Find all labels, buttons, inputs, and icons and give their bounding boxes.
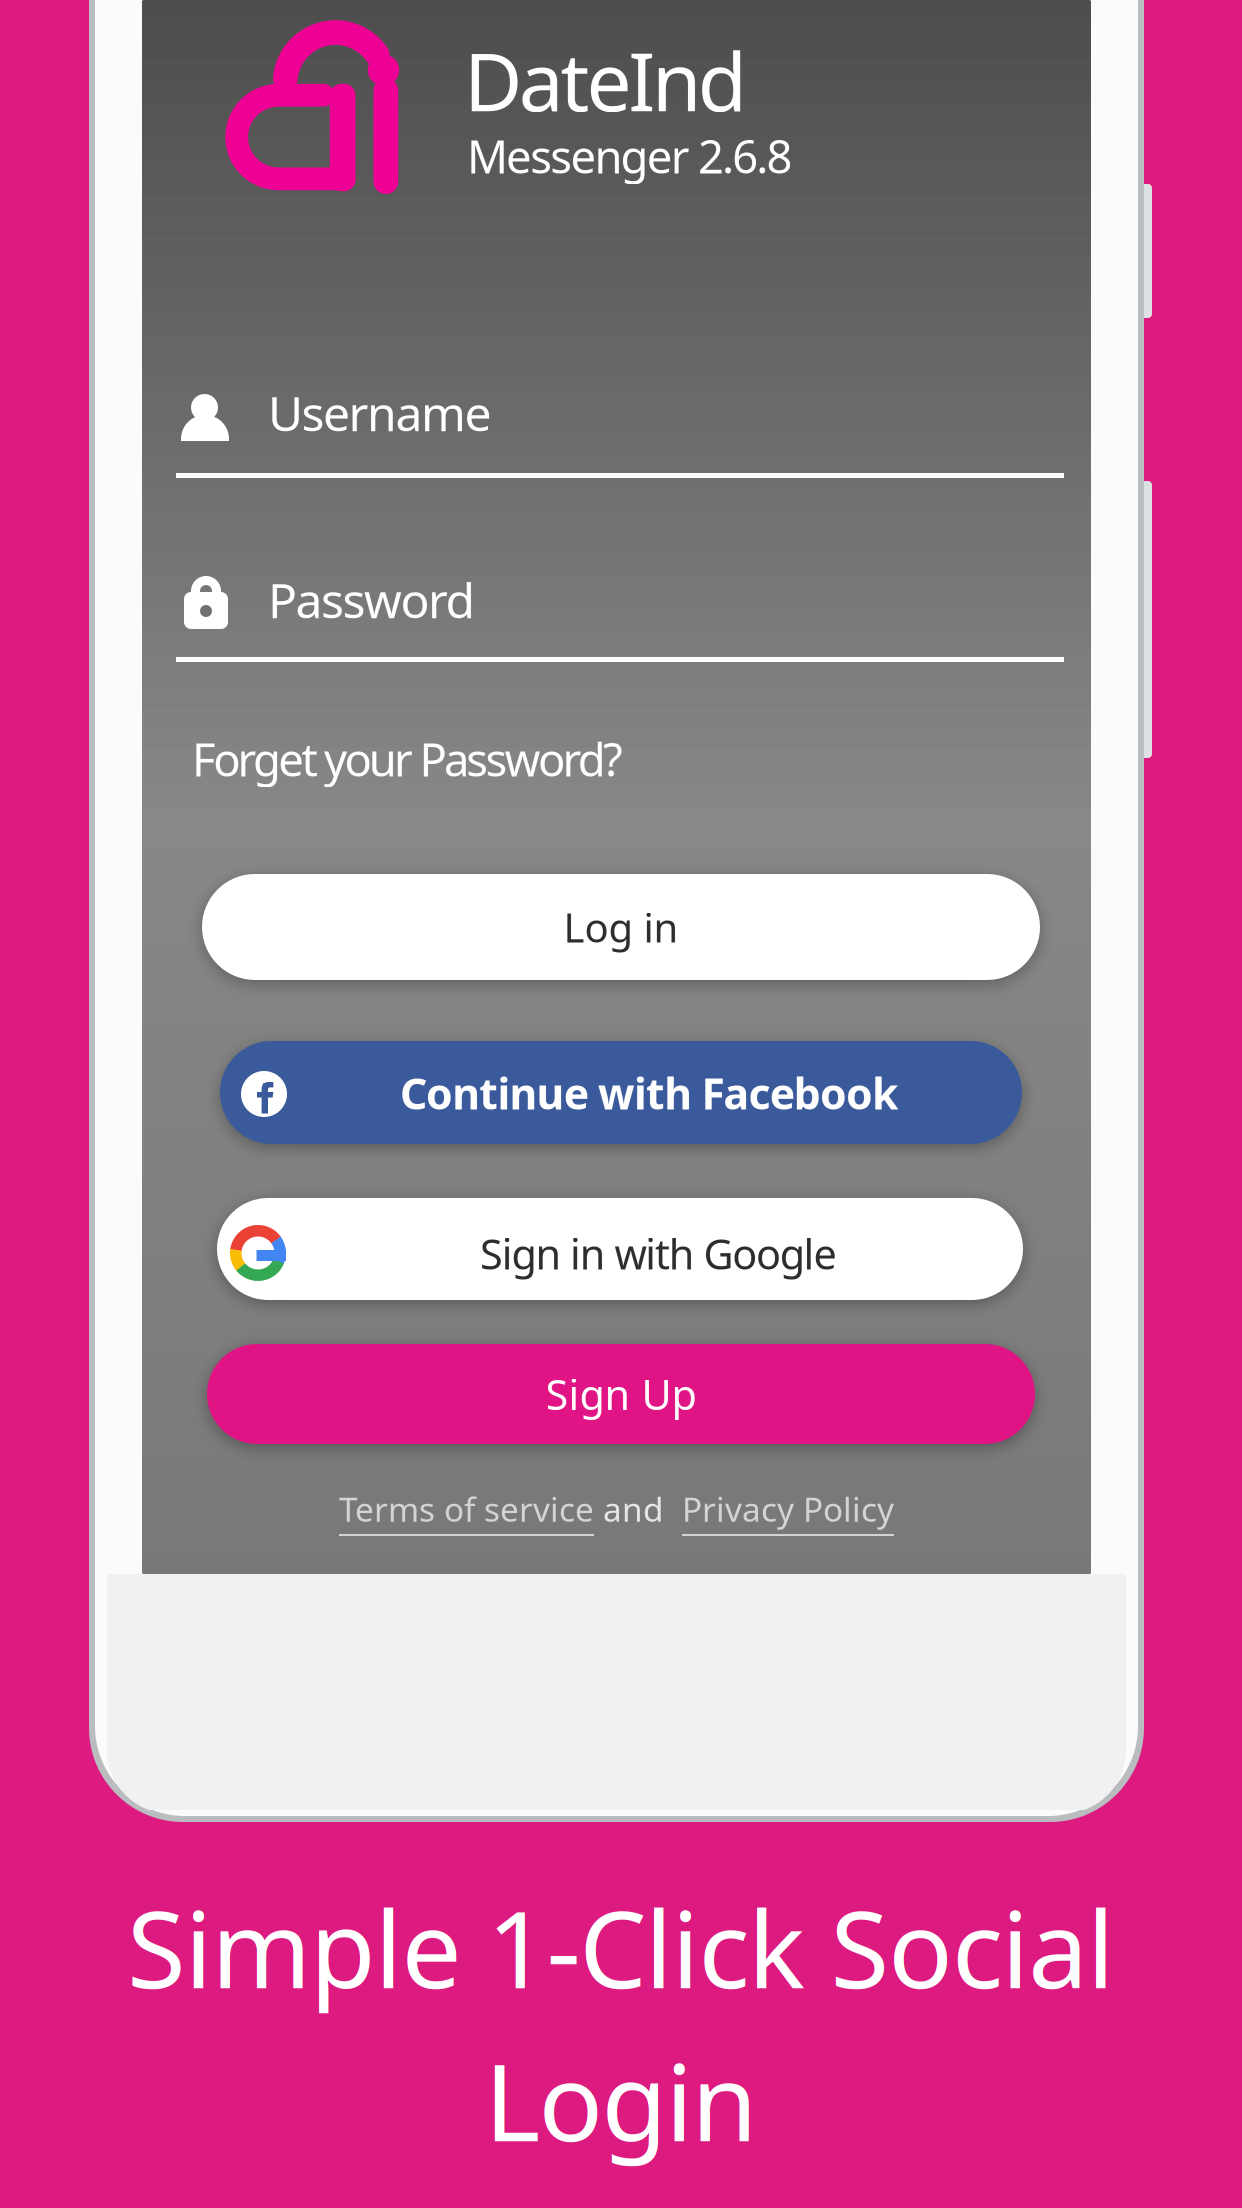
button[interactable]: Log in	[202, 874, 1040, 980]
staticText: DateInd	[464, 27, 747, 133]
staticText: Terms of service	[339, 1487, 594, 1531]
button[interactable]: Terms of service	[339, 1487, 594, 1536]
staticText: Sign in with Google	[480, 1226, 836, 1281]
button[interactable]: Forget your Password?	[192, 723, 623, 795]
staticText: Login	[484, 2029, 757, 2171]
staticText: Continue with Facebook	[400, 1065, 898, 1121]
staticText: Forget your Password?	[192, 729, 623, 789]
staticText: Messenger 2.6.8	[467, 126, 792, 186]
staticText: Simple 1-Click Social	[127, 1876, 1115, 2018]
staticText: and	[594, 1487, 682, 1531]
button[interactable]: Privacy Policy	[682, 1487, 894, 1536]
staticText: Username	[268, 381, 491, 444]
button[interactable]: Continue with Facebook	[220, 1041, 1022, 1144]
staticText: Password	[268, 568, 475, 631]
button[interactable]: Sign Up	[207, 1344, 1035, 1444]
staticText: Privacy Policy	[682, 1487, 894, 1531]
button[interactable]: Sign in with Google	[217, 1198, 1023, 1300]
staticText: Log in	[563, 900, 678, 953]
staticText: Sign Up	[545, 1367, 696, 1421]
